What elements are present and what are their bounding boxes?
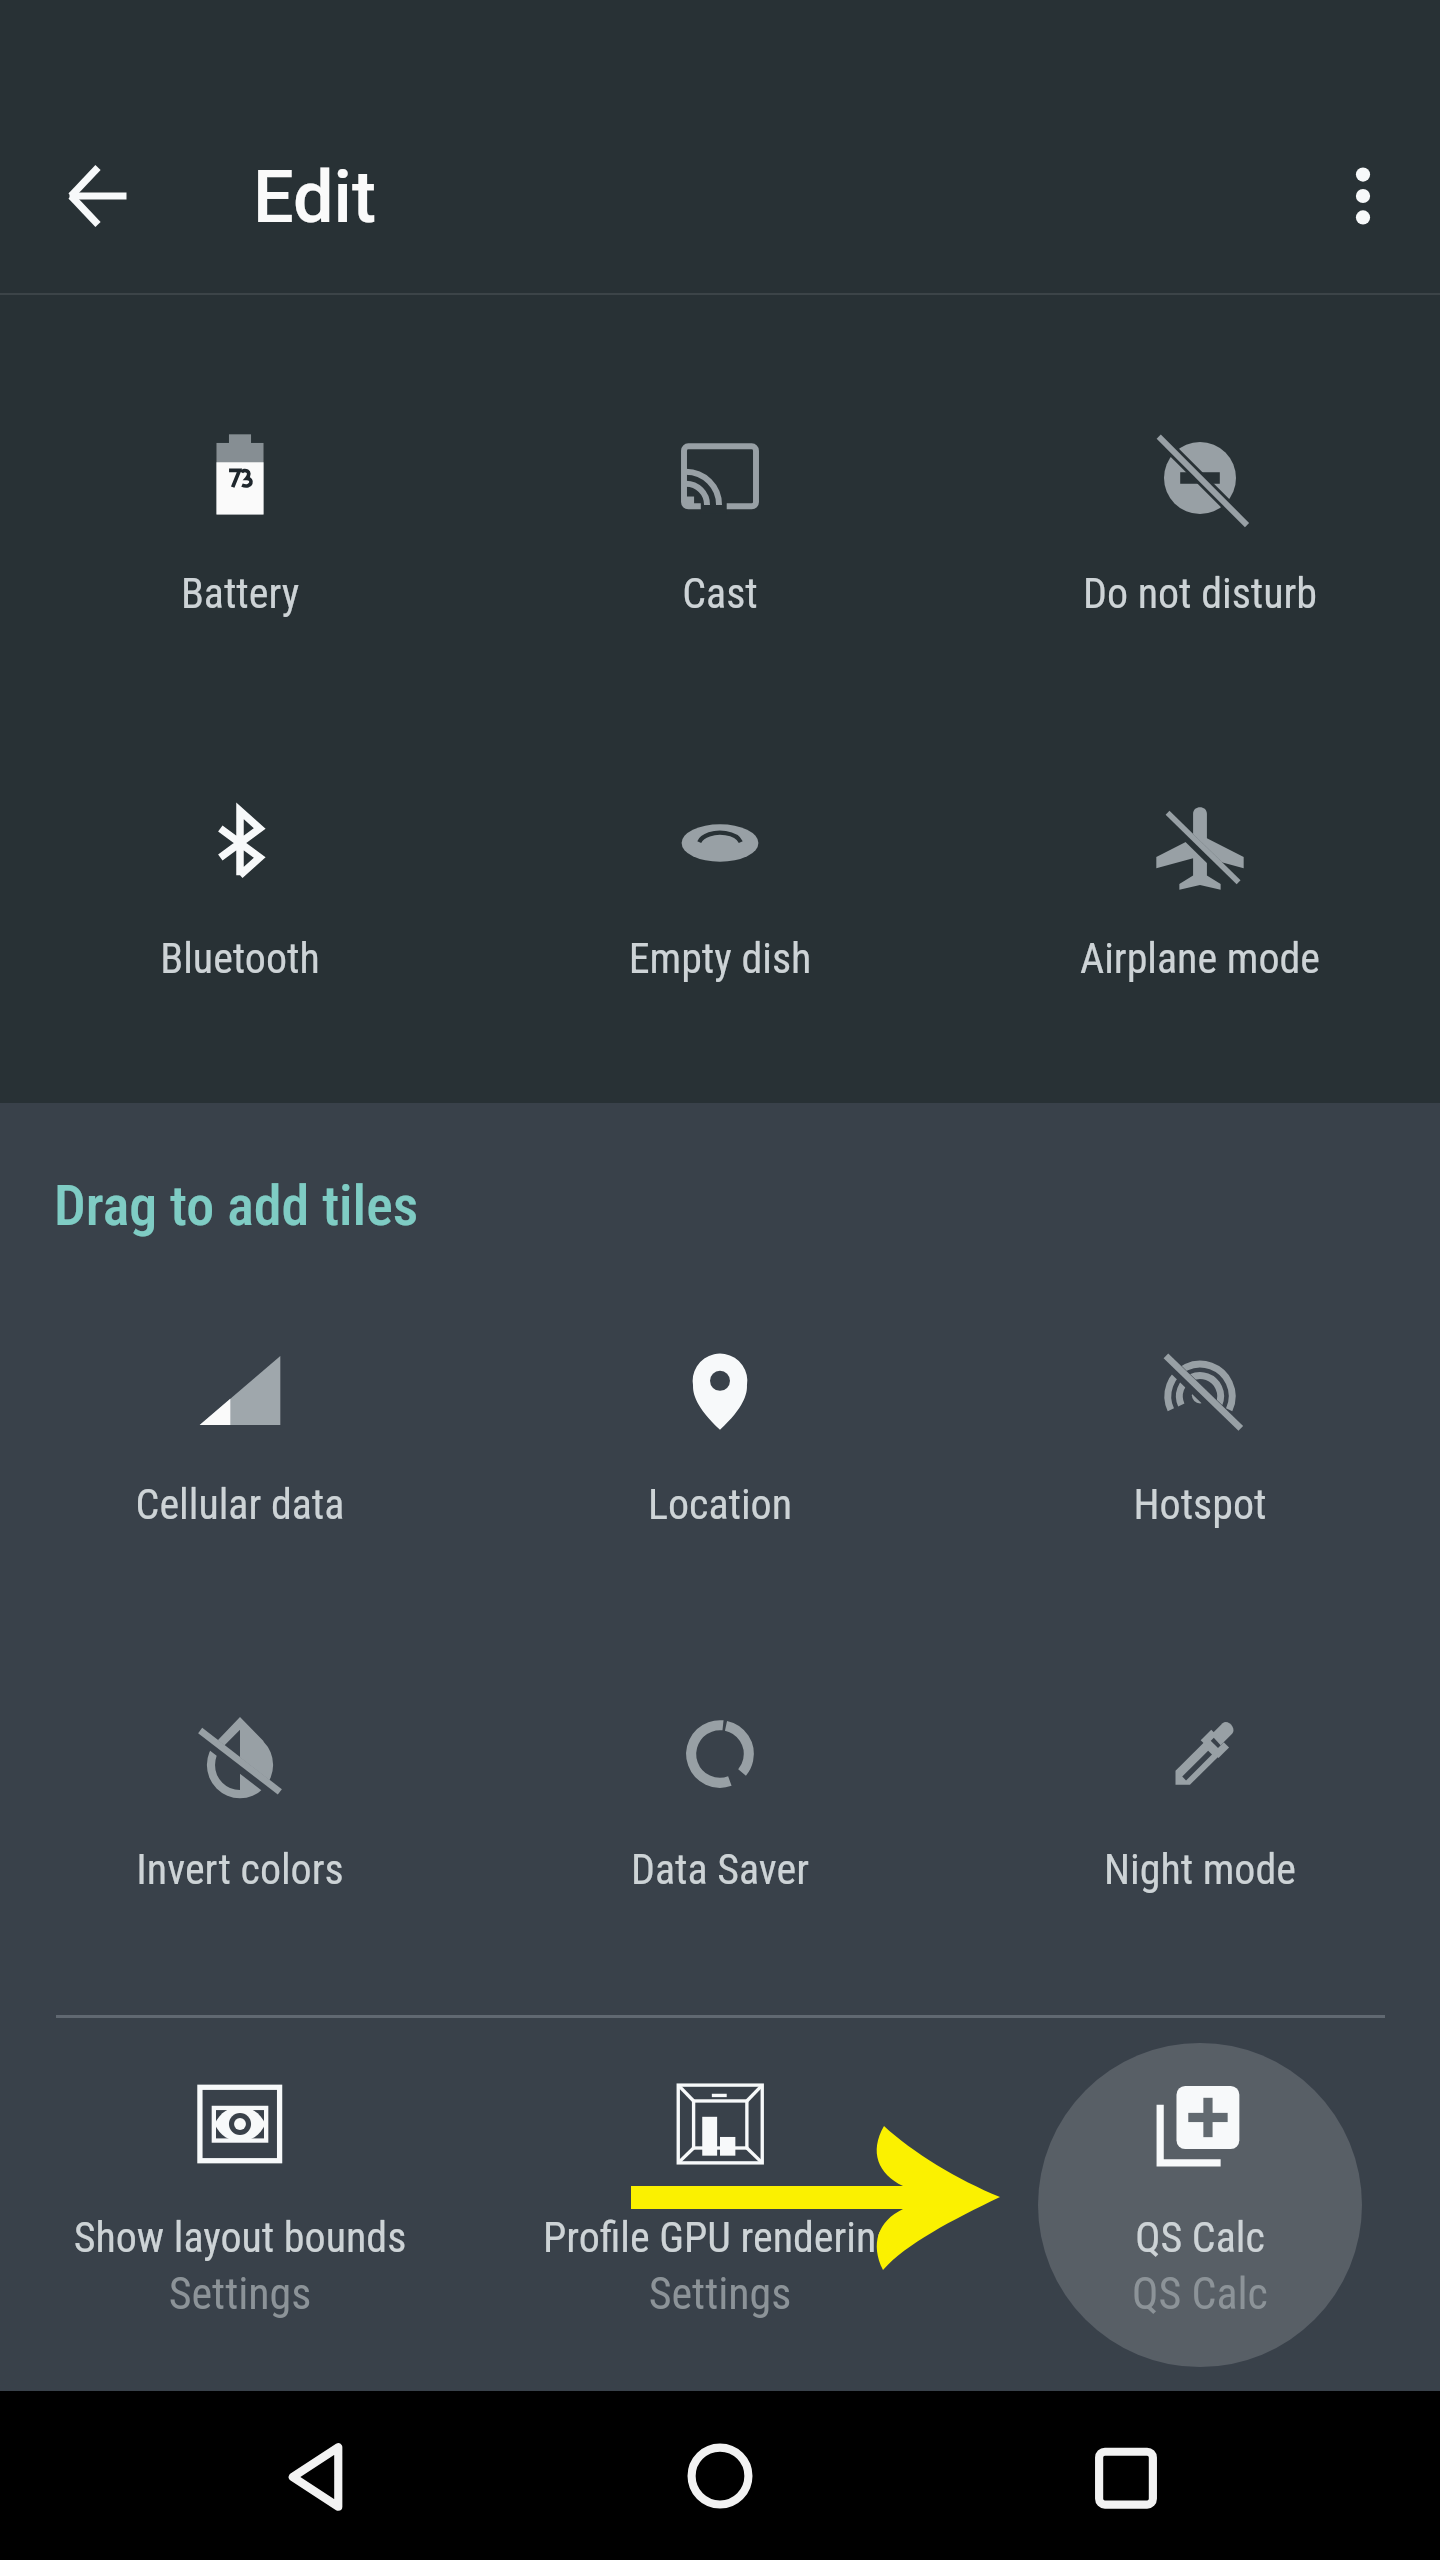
button[interactable]: Show layout bounds — [0, 2026, 480, 2326]
staticText: Night mode — [960, 1845, 1440, 1894]
button[interactable]: Bluetooth — [0, 709, 480, 1019]
staticText: Empty dish — [480, 934, 960, 983]
staticText: QS Calc — [960, 2213, 1440, 2262]
button[interactable]: More options — [1318, 151, 1408, 241]
button[interactable]: Profile GPU rendering — [480, 2026, 960, 2326]
staticText: Profile GPU rendering — [480, 2213, 960, 2262]
button[interactable]: Cellular data — [0, 1255, 480, 1565]
staticText: Do not disturb — [960, 569, 1440, 618]
button[interactable]: Night mode — [960, 1620, 1440, 1930]
button[interactable]: Location — [480, 1255, 960, 1565]
staticText: Drag to add tiles — [54, 1173, 419, 1239]
button[interactable]: Battery — [0, 344, 480, 654]
button[interactable]: QS Calc — [960, 2026, 1440, 2326]
button[interactable]: Back — [48, 146, 148, 246]
staticText: Cellular data — [0, 1480, 480, 1529]
button[interactable]: Do not disturb — [960, 344, 1440, 654]
staticText: Settings — [0, 2268, 480, 2320]
button[interactable]: Empty dish — [480, 709, 960, 1019]
staticText: QS Calc — [960, 2268, 1440, 2320]
staticText: Bluetooth — [0, 934, 480, 983]
button[interactable]: Home — [672, 2429, 768, 2525]
staticText: Invert colors — [0, 1845, 480, 1894]
staticText: Edit — [253, 155, 376, 239]
button[interactable]: Recent apps — [1078, 2429, 1174, 2525]
button[interactable]: Hotspot — [960, 1255, 1440, 1565]
staticText: Data Saver — [480, 1845, 960, 1894]
staticText: Airplane mode — [960, 934, 1440, 983]
staticText: Settings — [480, 2268, 960, 2320]
staticText: Location — [480, 1480, 960, 1529]
staticText: Battery — [0, 569, 480, 618]
button[interactable]: Cast — [480, 344, 960, 654]
button[interactable]: Data Saver — [480, 1620, 960, 1930]
button[interactable]: Back — [268, 2429, 364, 2525]
button[interactable]: Airplane mode — [960, 709, 1440, 1019]
staticText: Cast — [480, 569, 960, 618]
staticText: Hotspot — [960, 1480, 1440, 1529]
staticText: Show layout bounds — [0, 2213, 480, 2262]
button[interactable]: Invert colors — [0, 1620, 480, 1930]
